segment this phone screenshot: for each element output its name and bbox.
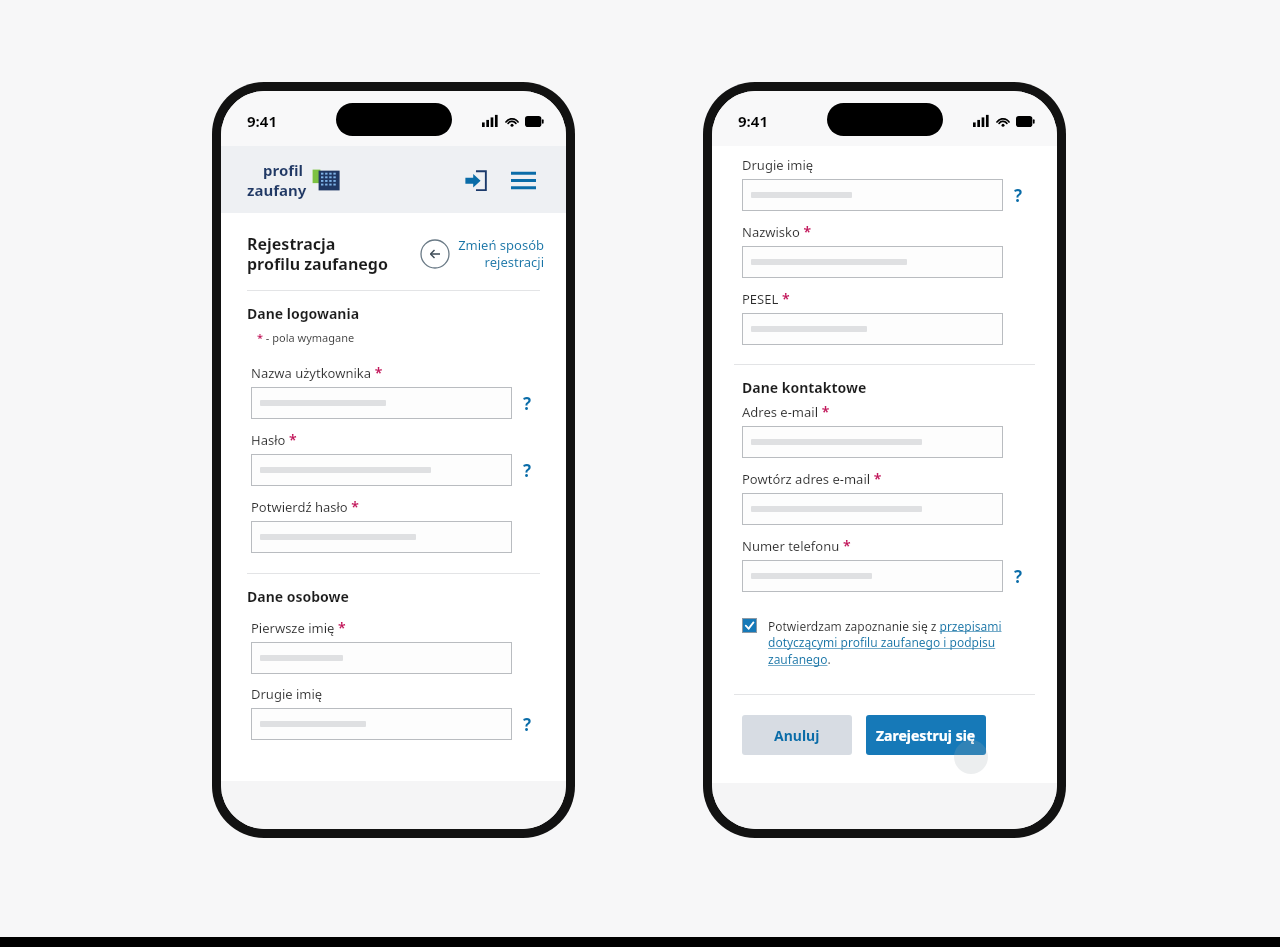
staticText: Dane logowania: [247, 304, 360, 323]
button[interactable]: Menu: [506, 163, 540, 197]
staticText: 9:41: [247, 111, 277, 131]
staticText: Zarejestruj się: [876, 726, 976, 745]
button[interactable]: [251, 642, 512, 674]
button[interactable]: [251, 521, 512, 553]
staticText: PESEL *: [742, 289, 790, 308]
button[interactable]: [251, 387, 512, 419]
staticText: *: [257, 330, 263, 345]
staticText: Nazwisko *: [742, 222, 812, 241]
button[interactable]: Zmień sposób rejestracji: [420, 236, 544, 271]
button[interactable]: [742, 246, 1003, 278]
staticText: Adres e-mail *: [742, 402, 830, 421]
staticText: Anuluj: [774, 726, 820, 745]
staticText: Pierwsze imię *: [251, 618, 346, 637]
button[interactable]: [742, 426, 1003, 458]
button[interactable]: [742, 179, 1003, 211]
button[interactable]: profil: [247, 160, 342, 200]
button[interactable]: ?: [519, 713, 536, 736]
staticText: Powtórz adres e-mail *: [742, 469, 882, 488]
staticText: zaufany: [247, 180, 307, 200]
button[interactable]: ?: [519, 459, 536, 482]
button[interactable]: ?: [519, 392, 536, 415]
staticText: Zmień sposób rejestracji: [458, 236, 544, 271]
button[interactable]: [251, 454, 512, 486]
button[interactable]: Potwierdzam zapoznanie się z przepisami …: [742, 618, 1033, 668]
button[interactable]: Anuluj: [742, 715, 852, 755]
staticText: profil: [263, 160, 304, 180]
button[interactable]: [251, 708, 512, 740]
button[interactable]: ?: [1010, 565, 1027, 588]
button[interactable]: Zarejestruj się: [866, 715, 986, 755]
button[interactable]: [742, 560, 1003, 592]
staticText: Potwierdzam zapoznanie się z przepisami …: [768, 618, 1033, 668]
button[interactable]: [742, 313, 1003, 345]
staticText: - pola wymagane: [263, 330, 355, 345]
staticText: Dane kontaktowe: [742, 378, 867, 397]
button[interactable]: Zaloguj się: [458, 163, 492, 197]
button[interactable]: ?: [1010, 184, 1027, 207]
button[interactable]: [742, 493, 1003, 525]
staticText: Numer telefonu *: [742, 536, 851, 555]
staticText: Dane osobowe: [247, 587, 349, 606]
staticText: Nazwa użytkownika *: [251, 363, 383, 382]
staticText: Drugie imię: [251, 685, 323, 703]
staticText: Hasło *: [251, 430, 297, 449]
staticText: Potwierdź hasło *: [251, 497, 359, 516]
staticText: 9:41: [738, 111, 768, 131]
staticText: Drugie imię: [742, 156, 814, 174]
staticText: Rejestracja profilu zaufanego: [247, 233, 388, 274]
